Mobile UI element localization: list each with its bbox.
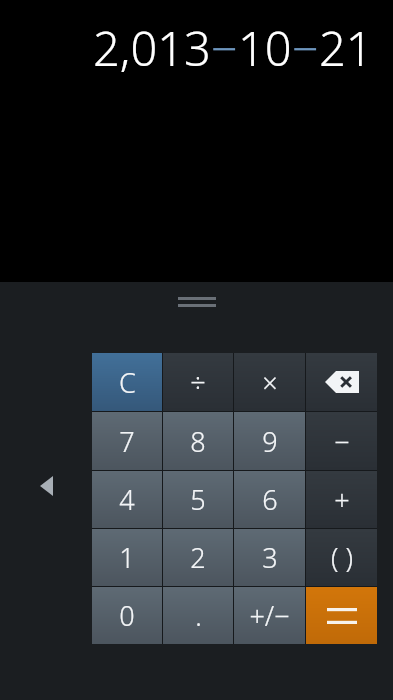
button[interactable]: 6 [234,471,305,528]
staticText: . [195,597,202,634]
button[interactable]: Backspace [306,353,377,411]
staticText: − [292,16,319,80]
staticText: 3 [262,539,278,576]
staticText: 2 [190,539,206,576]
staticText: − [334,423,350,460]
button[interactable]: + [306,471,377,528]
staticText: 0 [119,597,135,634]
staticText: 2,013 [93,16,211,80]
button[interactable]: 0 [92,587,162,644]
button[interactable]: 5 [163,471,233,528]
staticText: 4 [119,481,135,518]
button[interactable]: 2 [163,529,233,586]
staticText: × [262,364,278,401]
staticText: 7 [119,423,135,460]
button[interactable]: . [163,587,233,644]
staticText: − [211,16,238,80]
button[interactable]: +/− [234,587,305,644]
staticText: 1 [119,539,135,576]
button[interactable]: 9 [234,412,305,470]
button[interactable]: 4 [92,471,162,528]
button[interactable]: 3 [234,529,305,586]
button[interactable]: ( ) [306,529,377,586]
staticText: C [119,364,136,401]
staticText: +/− [249,597,290,634]
staticText: 5 [190,481,206,518]
button[interactable]: − [306,412,377,470]
staticText: 8 [190,423,206,460]
button[interactable]: Resize handle [178,295,216,309]
staticText: ( ) [331,539,353,576]
staticText: 6 [262,481,278,518]
button[interactable]: 1 [92,529,162,586]
button[interactable]: × [234,353,305,411]
staticText: 10 [238,16,292,80]
staticText: 21 [319,16,373,80]
staticText: 9 [262,423,278,460]
button[interactable]: Collapse panel [32,472,60,500]
staticText: ÷ [190,364,206,401]
staticText: + [334,481,350,518]
button[interactable]: Equals [306,587,377,644]
button[interactable]: 8 [163,412,233,470]
button[interactable]: ÷ [163,353,233,411]
button[interactable]: 7 [92,412,162,470]
button[interactable]: C [92,353,162,411]
